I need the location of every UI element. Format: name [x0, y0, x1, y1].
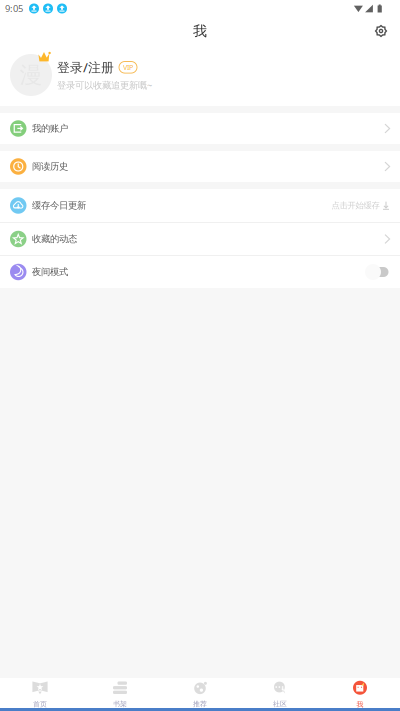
staticText: 社区 — [273, 700, 287, 708]
staticText: 缓存今日更新 — [32, 200, 86, 211]
button[interactable]: 我的账户 — [0, 113, 400, 144]
staticText: 夜间模式 — [32, 266, 68, 278]
staticText: 点击开始缓存 — [331, 200, 379, 211]
staticText: 登录可以收藏追更新嘅~ — [57, 79, 152, 91]
button[interactable]: 书架 — [80, 678, 160, 708]
button[interactable]: 我 — [320, 678, 400, 708]
button[interactable]: 社区 — [240, 678, 320, 708]
staticText: 推荐 — [193, 700, 207, 708]
button[interactable]: 阅读历史 — [0, 151, 400, 182]
button[interactable]: 收藏的动态 — [0, 223, 400, 255]
button[interactable]: 夜间模式 — [0, 256, 400, 288]
staticText: 我的账户 — [32, 123, 68, 134]
staticText: 漫 — [19, 61, 42, 89]
button[interactable]: 设置 — [366, 17, 396, 45]
staticText: 阅读历史 — [32, 161, 68, 172]
staticText: 我 — [193, 22, 207, 40]
staticText: VIP — [123, 62, 133, 72]
button[interactable]: 推荐 — [160, 678, 240, 708]
staticText: 登录/注册 — [57, 59, 114, 76]
button[interactable]: 漫 — [0, 45, 400, 100]
button[interactable]: 缓存今日更新 — [0, 189, 400, 222]
staticText: 收藏的动态 — [32, 233, 77, 245]
staticText: 书架 — [113, 700, 127, 708]
staticText: 首页 — [33, 700, 47, 708]
staticText: 我 — [356, 700, 363, 709]
staticText: 9:05 — [5, 2, 23, 15]
button[interactable]: 首页 — [0, 678, 80, 708]
